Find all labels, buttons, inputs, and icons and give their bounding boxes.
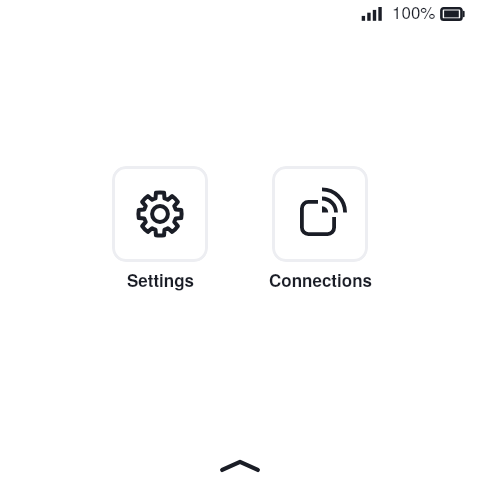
button[interactable]: Expand — [208, 448, 272, 480]
staticText: Settings — [127, 268, 194, 292]
button[interactable]: Settings — [100, 166, 220, 292]
staticText: Connections — [269, 268, 372, 292]
button[interactable]: Connections — [260, 166, 380, 292]
staticText: 100% — [392, 0, 436, 21]
